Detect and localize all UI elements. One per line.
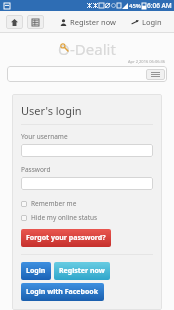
button[interactable]: Username input [21,144,153,157]
staticText: Q [58,39,70,55]
staticText: Register now [59,266,105,276]
staticText: -Dealit [70,39,116,55]
staticText: Login [142,17,162,27]
button[interactable]: Forgot your password? [21,229,111,247]
button[interactable]: Login [21,262,51,280]
staticText: Login [26,266,46,276]
button[interactable]: Search [7,66,167,82]
staticText: User's login [21,103,82,118]
button[interactable]: Register now [54,262,110,280]
staticText: Forgot your password? [26,233,106,243]
staticText: Login with Facebook [26,287,99,297]
staticText: Remember me [31,199,77,208]
staticText: 45% [129,2,141,10]
staticText: Register now [70,17,116,27]
button[interactable]: Hide my online status [21,212,98,223]
staticText: 6:06 AM [147,1,172,10]
button[interactable]: Menu [146,69,165,80]
button[interactable]: Password input [21,177,153,190]
staticText: Your username [21,132,68,141]
button[interactable]: Home [6,15,23,29]
button[interactable]: Register now [58,15,118,29]
staticText: Apr 2,2016 06:06:36 [128,59,166,64]
button[interactable]: Login with Facebook [21,283,104,301]
button[interactable]: Remember me [21,198,77,209]
staticText: Hide my online status [31,213,98,222]
button[interactable]: Login [130,15,164,29]
button[interactable]: Categories [27,15,44,29]
staticText: Password [21,165,51,174]
